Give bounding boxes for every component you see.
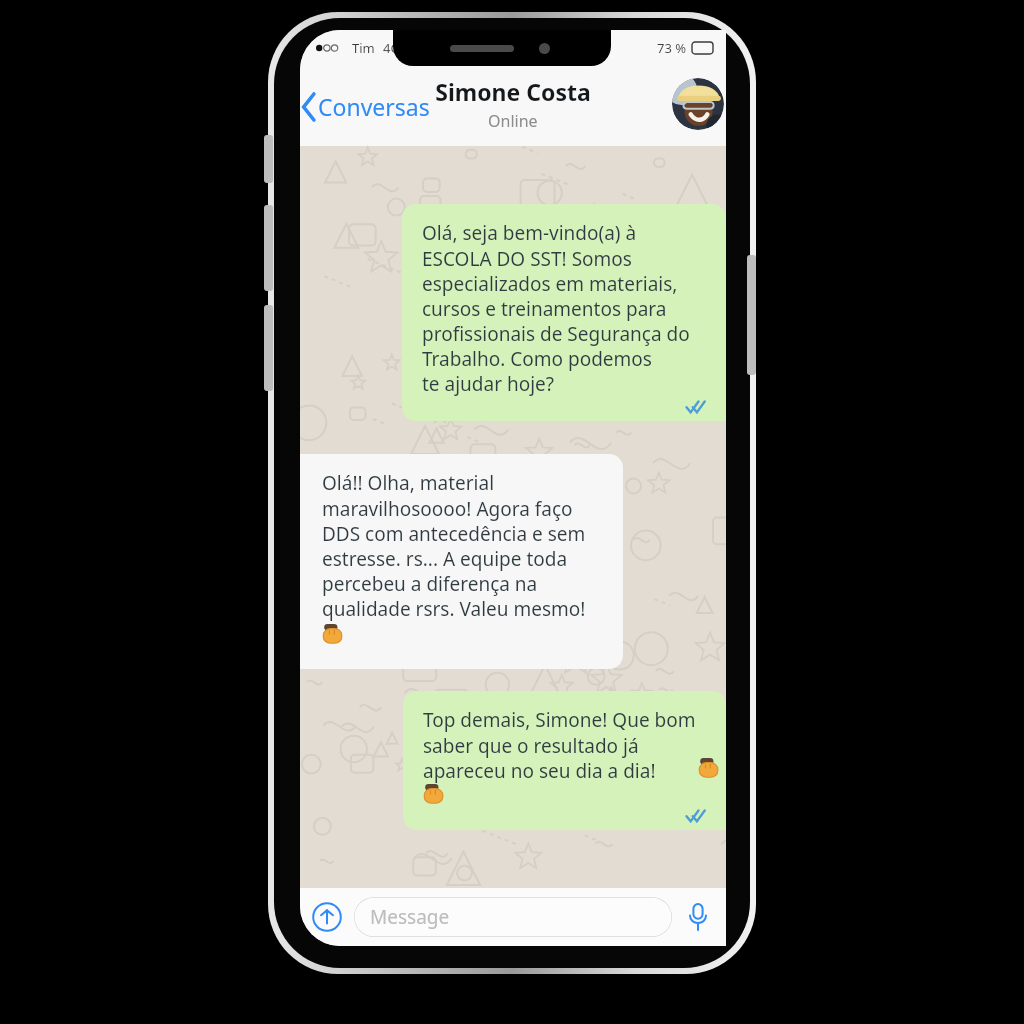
button[interactable]: Top demais, Simone! Que bom saber que o …	[403, 691, 726, 830]
staticText: Top demais, Simone! Que bom saber que o …	[423, 707, 696, 783]
button[interactable]: Attach	[310, 900, 344, 934]
staticText: 73 %	[657, 39, 687, 57]
staticText: Olá!! Olha, material maravilhosoooo! Ago…	[322, 470, 586, 621]
button[interactable]: Voice message	[680, 899, 716, 935]
staticText: Olá, seja bem-vindo(a) à ESCOLA DO SST! …	[422, 220, 690, 396]
button[interactable]: Olá, seja bem-vindo(a) à ESCOLA DO SST! …	[402, 204, 726, 421]
staticText: 4G	[383, 39, 400, 57]
staticText: Simone Costa	[435, 76, 591, 107]
button[interactable]: Olá!! Olha, material maravilhosoooo! Ago…	[300, 454, 623, 669]
button[interactable]: Contact profile photo	[672, 78, 724, 130]
staticText: Online	[488, 110, 538, 132]
staticText: Tim	[352, 39, 375, 57]
button[interactable]: Message	[354, 897, 672, 937]
staticText: Message	[370, 904, 450, 930]
staticText: Conversas	[318, 91, 430, 122]
button[interactable]: Conversas	[300, 85, 436, 128]
